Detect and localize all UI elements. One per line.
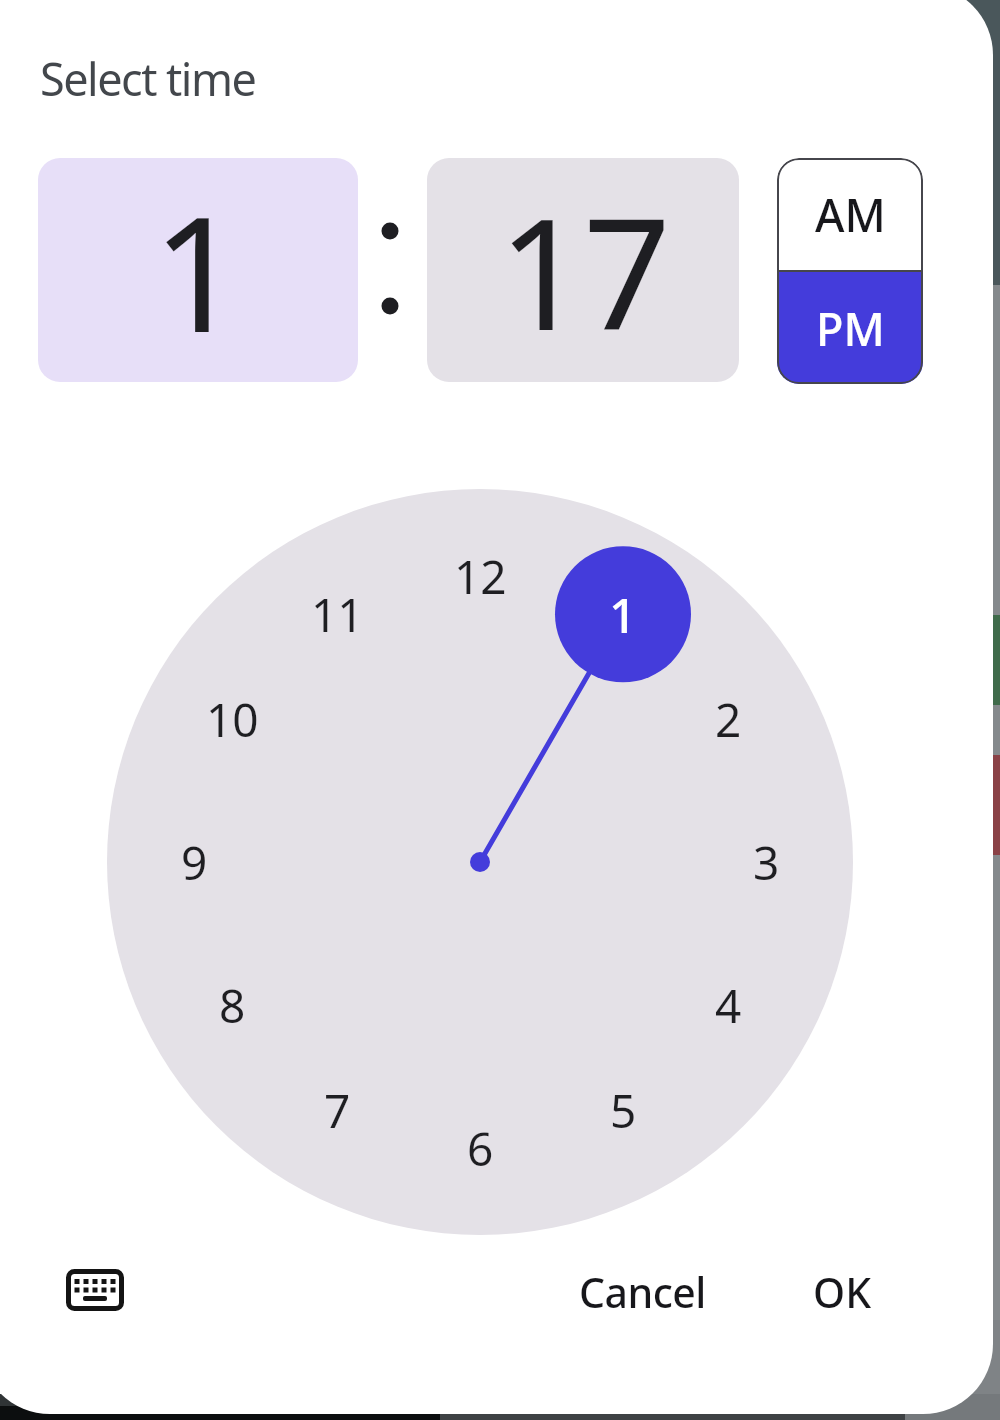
staticText: PM [816, 298, 885, 359]
staticText: 3 [753, 831, 780, 894]
staticText: Cancel [579, 1264, 706, 1320]
button[interactable]: 6 [435, 1103, 525, 1193]
staticText: 6 [467, 1117, 494, 1180]
button[interactable]: Cancel [545, 1250, 740, 1334]
button[interactable]: 1 [578, 569, 668, 659]
button[interactable]: 4 [683, 960, 773, 1050]
staticText: 17 [498, 165, 669, 375]
staticText: Select time [40, 48, 256, 109]
staticText: 8 [219, 974, 246, 1037]
button[interactable]: 11 [292, 569, 382, 659]
staticText: 10 [206, 688, 259, 751]
button[interactable]: 7 [292, 1065, 382, 1155]
button[interactable]: 17 [427, 158, 739, 382]
button[interactable]: 10 [187, 674, 277, 764]
button[interactable]: 12 [435, 531, 525, 621]
button[interactable]: 1 [38, 158, 358, 382]
staticText: OK [813, 1264, 872, 1320]
button[interactable]: AM [777, 158, 923, 270]
staticText: 2 [715, 688, 742, 751]
button[interactable]: 8 [187, 960, 277, 1050]
staticText: 12 [454, 545, 507, 608]
staticText: AM [815, 184, 886, 245]
button[interactable]: 5 [578, 1065, 668, 1155]
button[interactable]: OK [775, 1250, 910, 1334]
button[interactable]: PM [777, 272, 923, 384]
staticText: 7 [324, 1079, 351, 1142]
staticText: 4 [715, 974, 742, 1037]
button[interactable]: 2 [683, 674, 773, 764]
staticText: 1 [609, 582, 637, 647]
staticText: 9 [181, 831, 208, 894]
button[interactable] [47, 1248, 143, 1332]
button[interactable]: 9 [149, 817, 239, 907]
staticText: 11 [311, 583, 364, 646]
staticText: 5 [610, 1079, 637, 1142]
staticText: 1 [152, 161, 244, 379]
button[interactable]: 3 [721, 817, 811, 907]
